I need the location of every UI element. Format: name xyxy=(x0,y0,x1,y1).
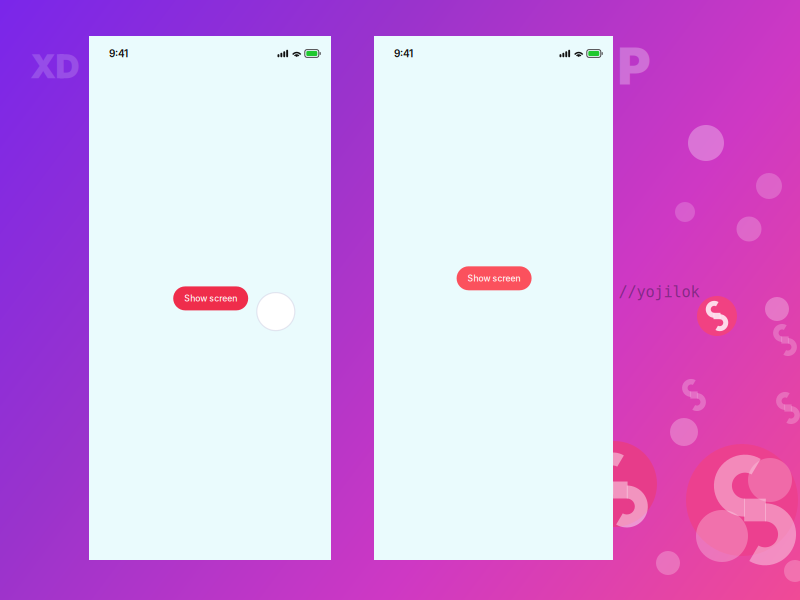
staticText: 9:41 xyxy=(109,47,128,60)
button[interactable]: Show screen xyxy=(173,286,248,310)
staticText: Show screen xyxy=(468,273,521,284)
staticText: //yojilok xyxy=(618,283,699,301)
staticText: Show screen xyxy=(184,293,237,304)
staticText: P xyxy=(617,35,650,97)
staticText: 9:41 xyxy=(394,47,413,60)
staticText: XD xyxy=(30,46,79,86)
button[interactable]: Show screen xyxy=(457,266,532,290)
